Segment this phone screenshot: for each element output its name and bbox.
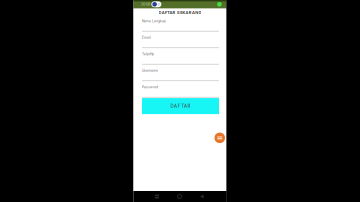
button[interactable]: Recents <box>153 192 161 200</box>
staticText: DAFTAR <box>170 103 190 109</box>
staticText: Password <box>142 85 158 89</box>
button[interactable]: Back <box>198 192 206 200</box>
staticText: Email <box>142 36 151 39</box>
staticText: Nama Lengkap <box>142 19 166 23</box>
staticText: Telp/Hp <box>142 52 154 56</box>
button[interactable]: Home <box>175 192 183 200</box>
button[interactable]: Open keyboard <box>214 133 225 143</box>
staticText: DAFTAR SEKARANG <box>159 10 201 15</box>
staticText: 20:08 <box>141 2 150 6</box>
staticText: Username <box>142 69 158 72</box>
button[interactable]: DAFTAR <box>142 98 219 114</box>
